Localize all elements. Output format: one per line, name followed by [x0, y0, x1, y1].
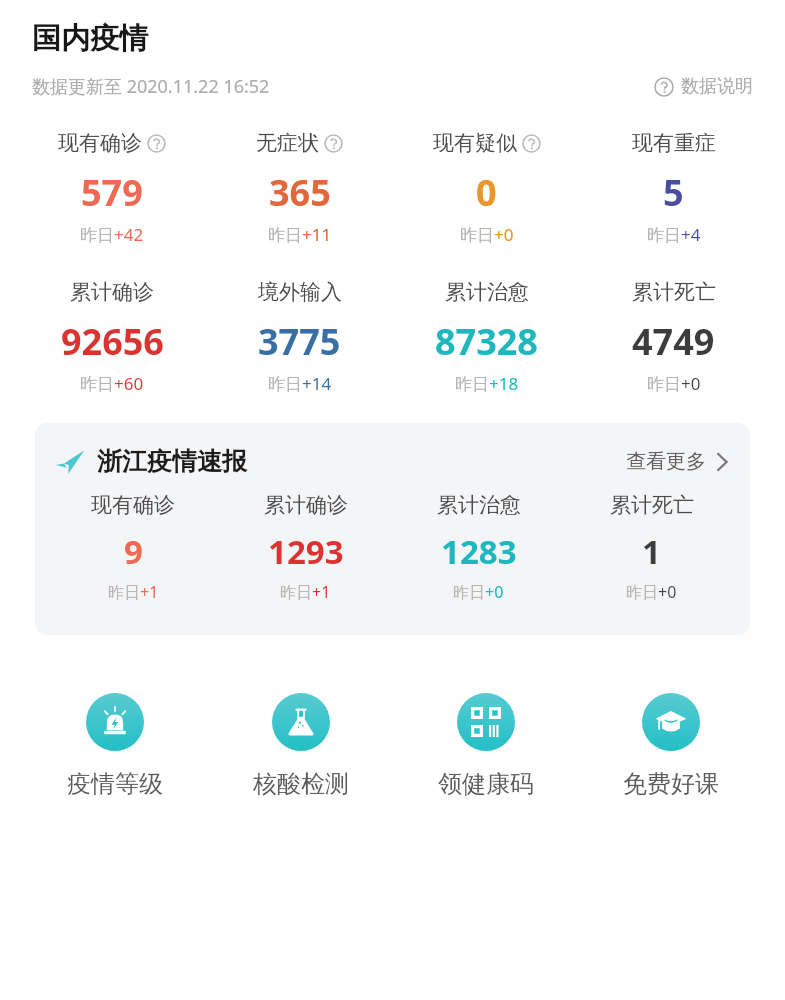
staticText: 累计死亡 — [632, 279, 716, 305]
staticText: 领健康码 — [438, 769, 534, 799]
button[interactable]: 累计死亡 — [565, 492, 738, 603]
staticText: 疫情等级 — [67, 769, 163, 799]
staticText: 昨日+0 — [453, 581, 504, 603]
button[interactable]: 数据说明 — [650, 71, 757, 102]
button[interactable]: 境外输入 — [206, 279, 393, 395]
staticText: 累计确诊 — [264, 492, 348, 518]
button[interactable]: 累计确诊 — [219, 492, 392, 603]
button[interactable]: 累计治愈 — [392, 492, 565, 603]
staticText: 现有确诊 — [58, 130, 142, 156]
staticText: 1 — [642, 529, 661, 574]
button[interactable]: 累计治愈 — [393, 279, 580, 395]
staticText: 累计治愈 — [445, 279, 529, 305]
staticText: 数据更新至 2020.11.22 16:52 — [32, 74, 270, 99]
button[interactable]: 免费好课 — [578, 693, 763, 799]
staticText: 4749 — [632, 317, 715, 366]
button[interactable]: 查看更多 — [622, 445, 732, 478]
staticText: 昨日+0 — [647, 372, 701, 395]
staticText: 昨日+42 — [80, 223, 144, 246]
staticText: 数据说明 — [681, 75, 753, 98]
button[interactable]: 核酸检测 — [208, 693, 393, 799]
staticText: 昨日+11 — [268, 223, 332, 246]
staticText: 现有重症 — [632, 130, 716, 156]
staticText: 昨日+14 — [268, 372, 332, 395]
staticText: 1293 — [268, 529, 344, 574]
staticText: 昨日+18 — [455, 372, 519, 395]
staticText: 9 — [124, 529, 143, 574]
staticText: 现有确诊 — [91, 492, 175, 518]
staticText: 昨日+0 — [626, 581, 677, 603]
staticText: 87328 — [435, 317, 538, 366]
staticText: 3775 — [258, 317, 341, 366]
staticText: 现有疑似 — [433, 130, 517, 156]
button[interactable]: 累计确诊 — [18, 279, 206, 395]
staticText: 查看更多 — [626, 449, 706, 474]
button[interactable]: 现有重症 — [580, 130, 767, 246]
staticText: 境外输入 — [258, 279, 342, 305]
staticText: 92656 — [61, 317, 164, 366]
staticText: 昨日+1 — [280, 581, 331, 603]
staticText: 5 — [663, 168, 684, 217]
staticText: 累计死亡 — [610, 492, 694, 518]
staticText: 昨日+60 — [80, 372, 144, 395]
staticText: 昨日+0 — [460, 223, 514, 246]
staticText: 累计治愈 — [437, 492, 521, 518]
staticText: 核酸检测 — [253, 769, 349, 799]
button[interactable]: 无症状 — [206, 130, 393, 246]
button[interactable]: 现有疑似 — [393, 130, 580, 246]
staticText: 累计确诊 — [70, 279, 154, 305]
staticText: 1283 — [441, 529, 517, 574]
staticText: 365 — [269, 168, 331, 217]
button[interactable]: 现有确诊 — [18, 130, 206, 246]
staticText: 0 — [476, 168, 497, 217]
button[interactable]: 领健康码 — [393, 693, 578, 799]
staticText: 国内疫情 — [32, 20, 148, 57]
staticText: 免费好课 — [623, 769, 719, 799]
staticText: 昨日+4 — [647, 223, 701, 246]
staticText: 浙江疫情速报 — [97, 446, 247, 477]
staticText: 无症状 — [256, 130, 319, 156]
staticText: 579 — [81, 168, 143, 217]
button[interactable]: 现有确诊 — [47, 492, 219, 603]
staticText: 昨日+1 — [108, 581, 159, 603]
button[interactable]: 累计死亡 — [580, 279, 767, 395]
button[interactable]: 疫情等级 — [22, 693, 208, 799]
